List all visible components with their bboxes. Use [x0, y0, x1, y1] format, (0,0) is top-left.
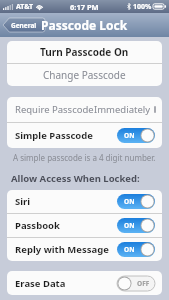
staticText: Allow Access When Locked: [11, 172, 140, 185]
button[interactable]: Turn Passcode On [7, 41, 162, 63]
button[interactable]: Off [117, 276, 155, 291]
button[interactable]: Erase Data [7, 271, 162, 295]
button[interactable]: Change Passcode [7, 64, 162, 86]
button[interactable]: On [117, 218, 155, 233]
staticText: AT&T [16, 2, 34, 12]
button[interactable]: On [117, 128, 155, 143]
staticText: OFF [137, 279, 150, 288]
staticText: General [11, 21, 37, 30]
staticText: Passcode Lock [41, 17, 128, 33]
button[interactable]: On [117, 194, 155, 209]
staticText: ON [124, 221, 135, 230]
staticText: ON [124, 197, 135, 206]
button[interactable]: General [3, 18, 45, 32]
staticText: Passbook [15, 219, 60, 232]
staticText: ON [124, 131, 135, 140]
staticText: Reply with Message [15, 243, 109, 256]
button[interactable]: Simple Passcode [7, 123, 162, 148]
staticText: 6:17 PM [70, 2, 99, 12]
button[interactable]: On [117, 242, 155, 257]
staticText: Turn Passcode On [40, 45, 129, 59]
staticText: ON [124, 245, 135, 254]
staticText: 100% [133, 2, 152, 12]
staticText: Erase Data [15, 277, 66, 290]
staticText: Change Passcode [43, 68, 126, 82]
staticText: Siri [15, 195, 31, 208]
button[interactable]: Passbook [7, 214, 162, 237]
staticText: A simple passcode is a 4 digit number. [13, 152, 156, 163]
button[interactable]: Reply with Message [7, 238, 162, 261]
staticText: Immediately [94, 103, 151, 116]
staticText: Simple Passcode [15, 129, 93, 142]
button[interactable]: Require Passcode [7, 97, 162, 122]
button[interactable]: Siri [7, 190, 162, 213]
staticText: Require Passcode [15, 103, 94, 116]
